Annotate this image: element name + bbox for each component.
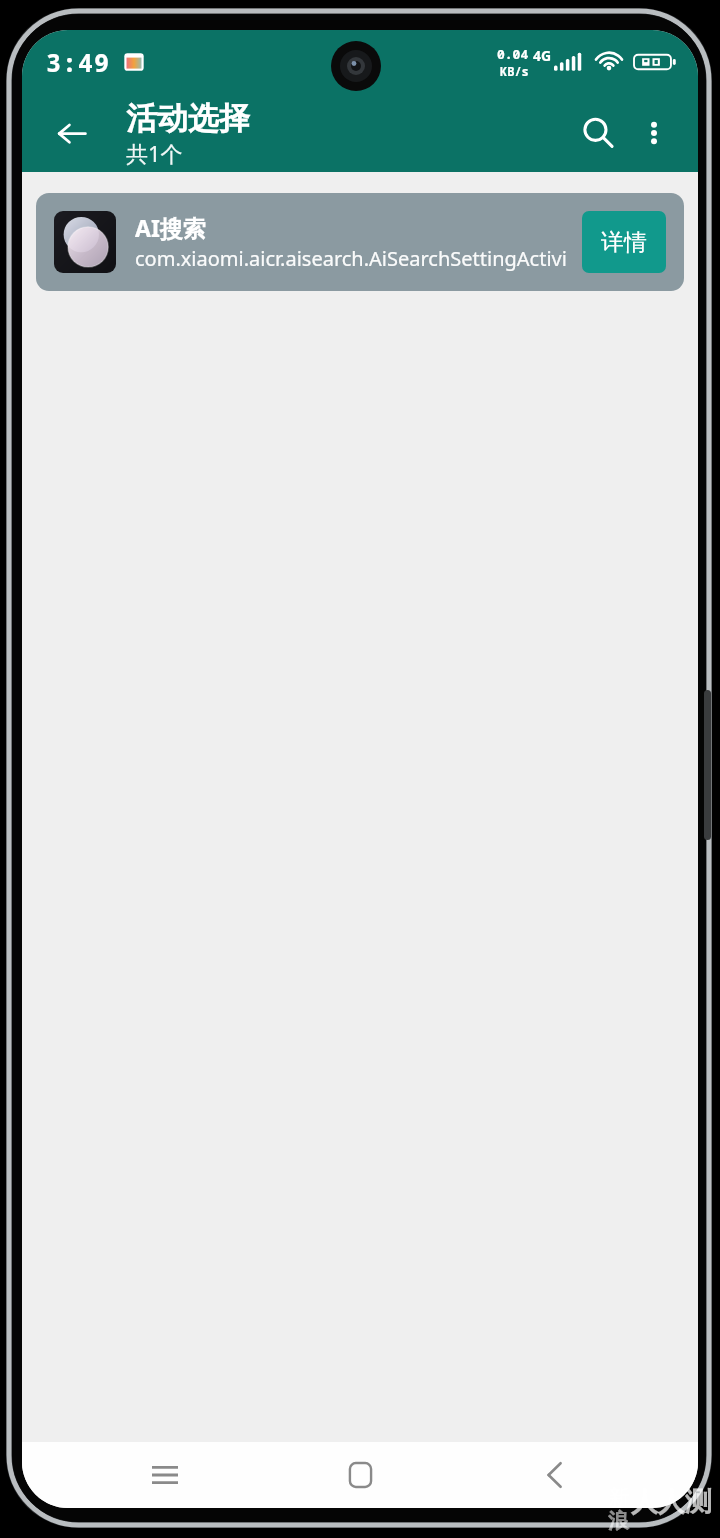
staticText: 共1个 — [126, 138, 183, 168]
staticText: 3:49 — [46, 45, 111, 79]
button[interactable]: 返回 — [44, 105, 100, 161]
staticText: 4G — [533, 46, 552, 65]
staticText: 新 浪 — [608, 1485, 629, 1534]
staticText: 活动选择 — [126, 99, 250, 138]
button[interactable]: 主屏幕 — [318, 1445, 402, 1505]
staticText: 0.04 — [497, 45, 529, 63]
button[interactable]: 返回 — [513, 1445, 597, 1505]
button[interactable]: 详情 — [582, 211, 666, 273]
staticText: 人人测 — [631, 1485, 712, 1519]
staticText: 详情 — [601, 228, 647, 257]
staticText: com.xiaomi.aicr.aisearch.AiSearchSetting… — [135, 245, 572, 272]
button[interactable]: 搜索 — [568, 103, 628, 163]
staticText: AI搜索 — [135, 212, 206, 243]
button[interactable]: 最近任务 — [123, 1445, 207, 1505]
button[interactable]: AI搜索 — [36, 193, 684, 291]
button[interactable]: 更多选项 — [628, 107, 680, 159]
staticText: KB/s — [500, 63, 529, 79]
